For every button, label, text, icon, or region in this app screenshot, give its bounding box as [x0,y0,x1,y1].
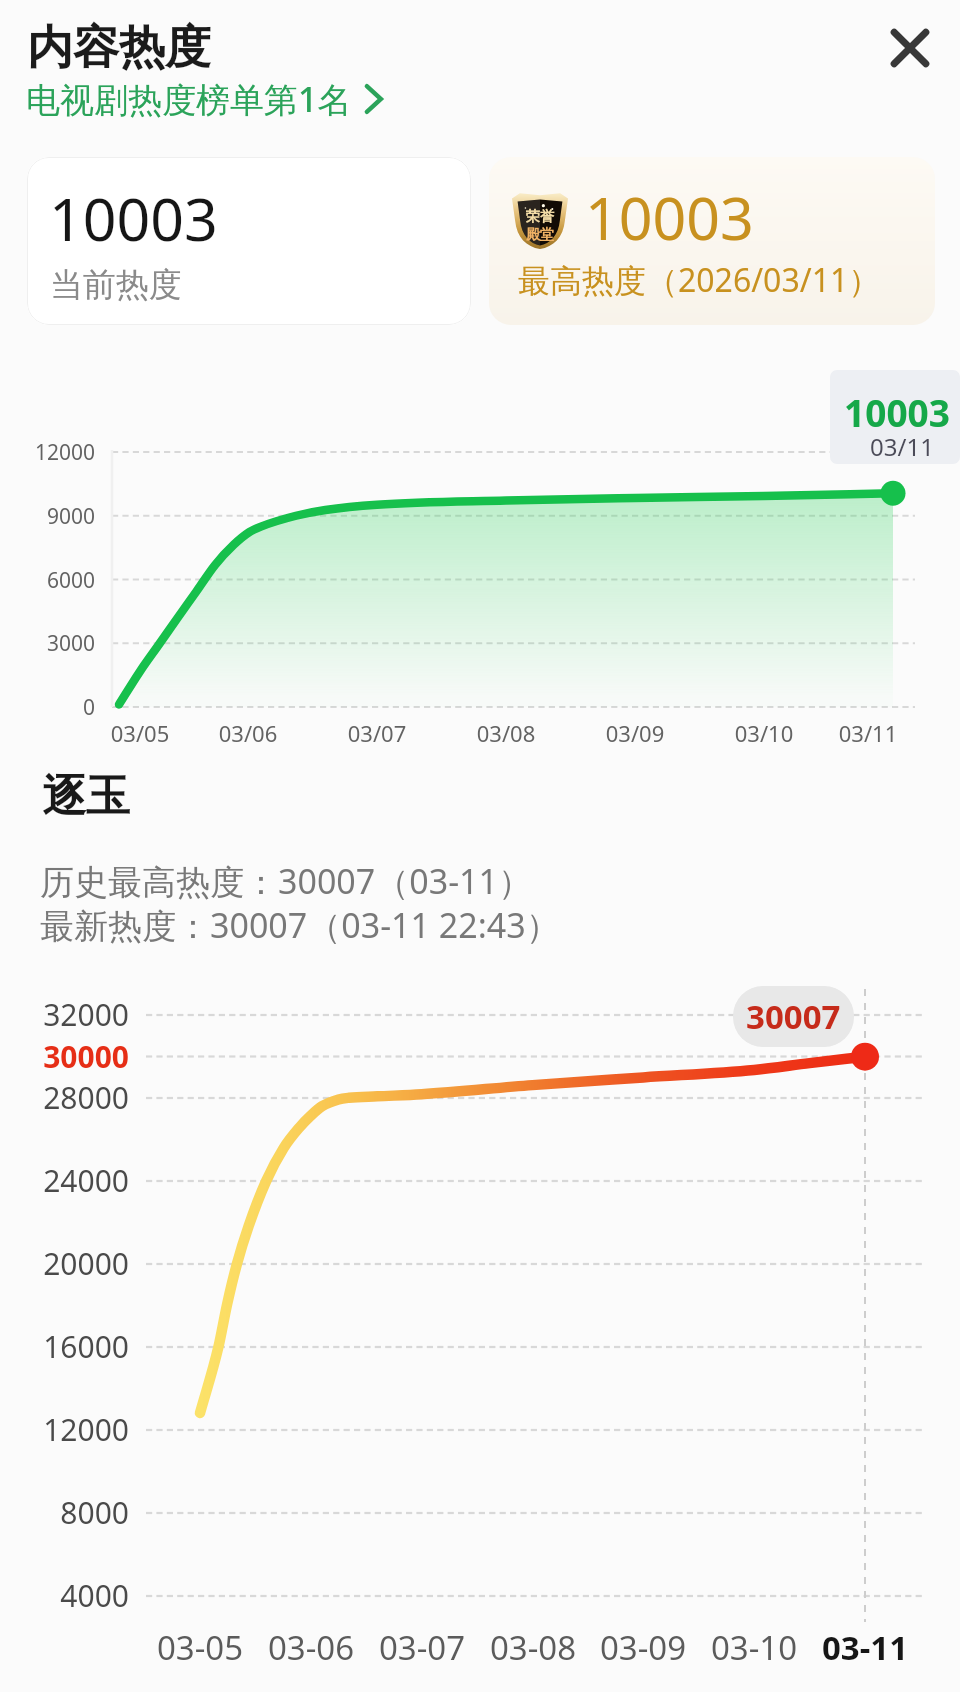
button[interactable]: 电视剧热度榜单第1名 [26,76,384,122]
staticText: 24000 [1,1160,129,1201]
staticText: 0 [20,693,95,722]
staticText: 28000 [1,1077,129,1118]
button[interactable]: Close [874,12,946,84]
staticText: 03/07 [322,718,432,748]
staticText: 03/06 [193,718,303,748]
staticText: 32000 [1,994,129,1035]
staticText: 03/11 [813,718,923,748]
staticText: 8000 [1,1492,129,1533]
staticText: 30000 [1,1036,129,1077]
staticText: 电视剧热度榜单第1名 [26,76,352,122]
staticText: 6000 [20,566,95,595]
button[interactable]: 荣誉 [489,157,935,325]
button[interactable]: Content heat trend chart [0,360,960,750]
staticText: 03/10 [709,718,819,748]
staticText: 10003 [836,387,958,437]
staticText: 12000 [20,438,95,467]
staticText: 03-10 [689,1625,819,1670]
staticText: 03-09 [578,1625,708,1670]
staticText: 最新热度：30007（03-11 22:43） [40,902,560,948]
staticText: 03/08 [451,718,561,748]
staticText: 当前热度 [50,264,182,306]
staticText: 10003 [585,177,754,257]
staticText: 30007 [746,994,841,1039]
button[interactable]: 10003 [27,157,471,325]
staticText: 03-11 [800,1625,930,1670]
staticText: 荣誉 [512,208,568,226]
staticText: 4000 [1,1575,129,1616]
staticText: 03-05 [135,1625,265,1670]
staticText: 殿堂 [512,226,568,244]
staticText: 10003 [49,178,218,258]
staticText: 03-07 [357,1625,487,1670]
staticText: 逐玉 [42,769,130,824]
staticText: 20000 [1,1243,129,1284]
staticText: 最高热度（2026/03/11） [518,258,881,302]
staticText: 03/09 [580,718,690,748]
staticText: 3000 [20,629,95,658]
staticText: 03-06 [246,1625,376,1670]
staticText: 03/11 [841,430,960,463]
staticText: 16000 [1,1326,129,1367]
staticText: 内容热度 [27,19,211,77]
button[interactable]: Heat history chart [0,965,960,1625]
staticText: 12000 [1,1409,129,1450]
staticText: 历史最高热度：30007（03-11） [40,858,532,904]
staticText: 03-08 [468,1625,598,1670]
staticText: 03/05 [85,718,195,748]
staticText: 9000 [20,502,95,531]
